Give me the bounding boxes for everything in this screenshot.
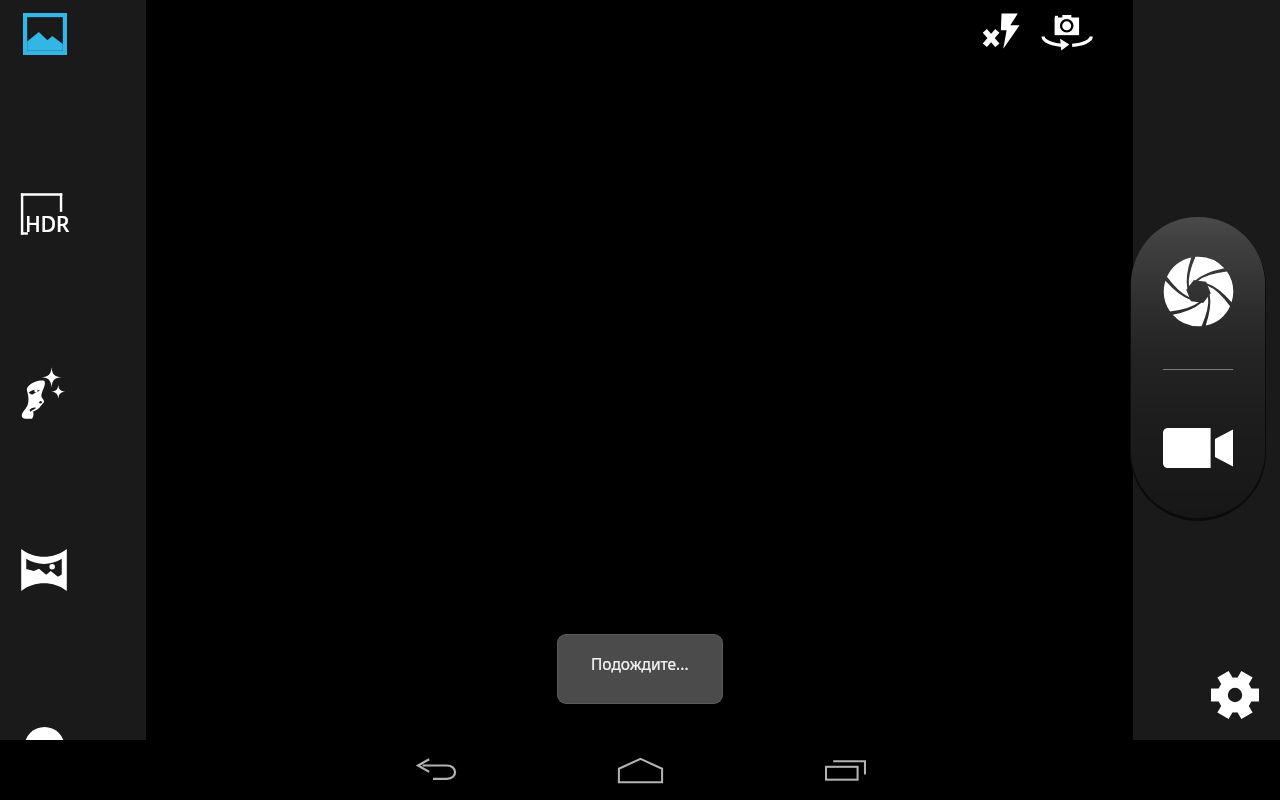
button[interactable]: Gallery: [13, 3, 75, 65]
button[interactable]: Settings: [1205, 665, 1265, 725]
button[interactable]: Panorama: [14, 540, 74, 600]
button[interactable]: HDR: [10, 182, 78, 242]
button[interactable]: Home: [603, 740, 677, 800]
button[interactable]: Record video: [1131, 370, 1265, 518]
button[interactable]: More modes: [14, 700, 75, 740]
button[interactable]: Shutter: [1131, 217, 1265, 369]
button[interactable]: Back: [400, 740, 474, 800]
button[interactable]: Recent apps: [808, 740, 882, 800]
button[interactable]: Switch camera: [1032, 0, 1102, 70]
button[interactable]: Beauty: [10, 360, 72, 422]
staticText: HDR: [25, 210, 70, 239]
button[interactable]: Flash off: [968, 0, 1032, 64]
staticText: Подождите...: [591, 653, 689, 674]
